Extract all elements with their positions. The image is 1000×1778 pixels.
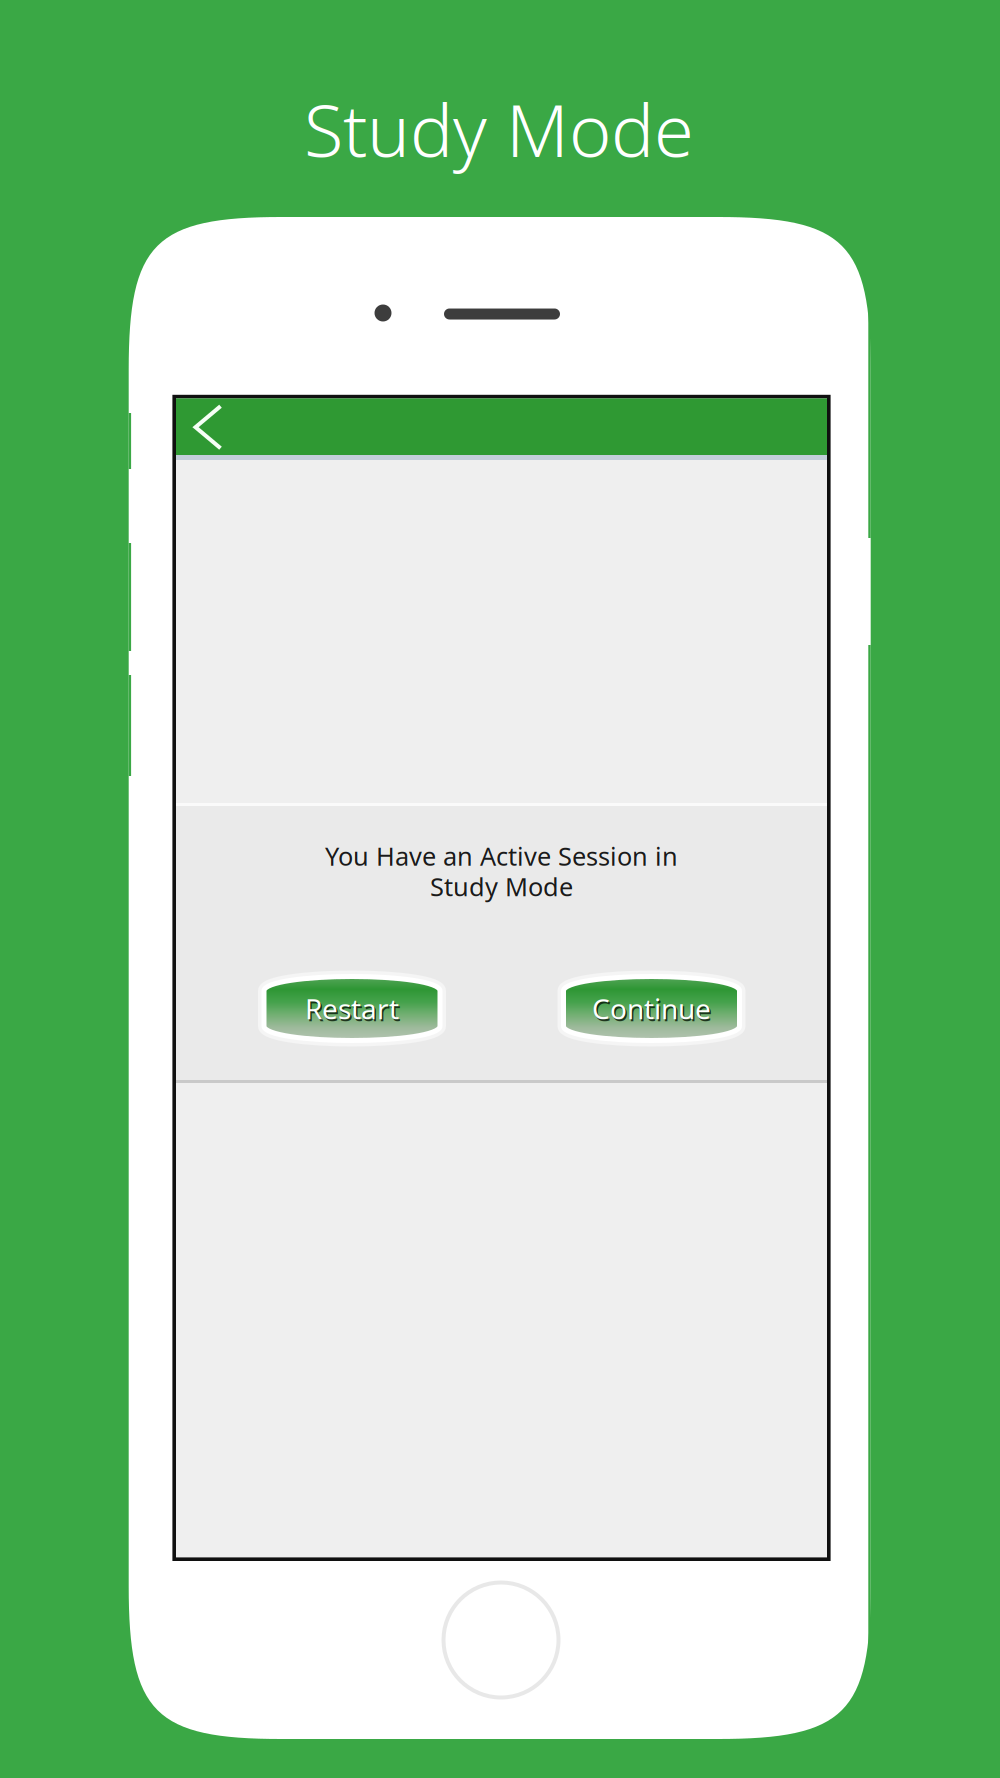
staticText: Continue: [592, 990, 711, 1027]
staticText: Continue: [593, 992, 712, 1029]
button[interactable]: Restart: [259, 971, 444, 1045]
staticText: Study Mode: [430, 870, 573, 903]
staticText: You Have an Active Session in: [325, 839, 678, 873]
staticText: Restart: [306, 992, 400, 1029]
staticText: Restart: [305, 990, 399, 1027]
staticText: Study Mode: [304, 81, 694, 177]
button[interactable]: Continue: [559, 971, 744, 1045]
button[interactable]: Back: [174, 399, 242, 455]
